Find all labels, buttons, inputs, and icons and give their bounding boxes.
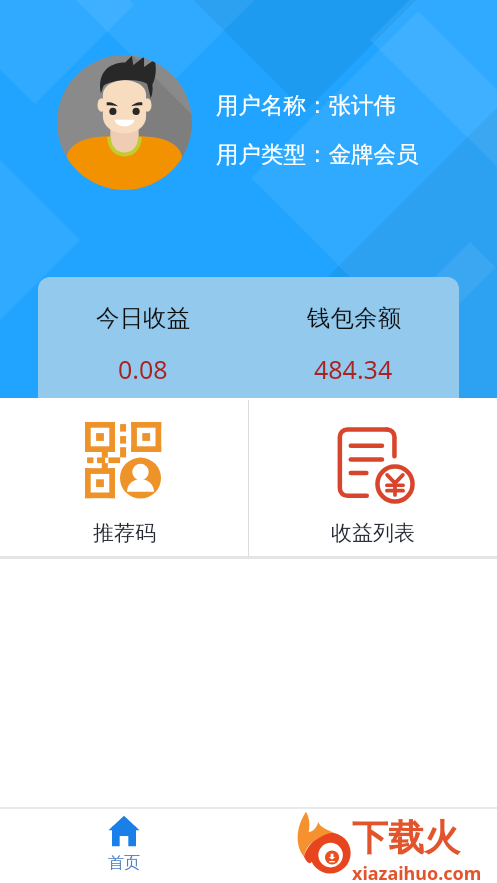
staticText: 钱包余额 xyxy=(307,303,401,333)
staticText: 收益列表 xyxy=(331,520,415,546)
other: 首页 xyxy=(108,815,140,847)
staticText: 首页 xyxy=(108,853,140,873)
staticText: 下载火 xyxy=(352,815,460,860)
staticText: 0.08 xyxy=(118,352,168,386)
staticText: 用户类型：金牌会员 xyxy=(216,140,419,168)
staticText: 用户名称：张计伟 xyxy=(216,91,396,119)
button[interactable]: 推荐码 xyxy=(0,398,248,556)
button[interactable]: 收益列表 xyxy=(248,398,497,556)
button[interactable]: 今日收益 xyxy=(38,277,248,398)
staticText: 今日收益 xyxy=(96,303,190,333)
button[interactable]: 首页 xyxy=(0,807,248,883)
staticText: xiazaihuo.com xyxy=(352,861,482,882)
staticText: 484.34 xyxy=(314,352,393,386)
staticText: 推荐码 xyxy=(93,520,156,546)
button[interactable]: 钱包余额 xyxy=(248,277,459,398)
